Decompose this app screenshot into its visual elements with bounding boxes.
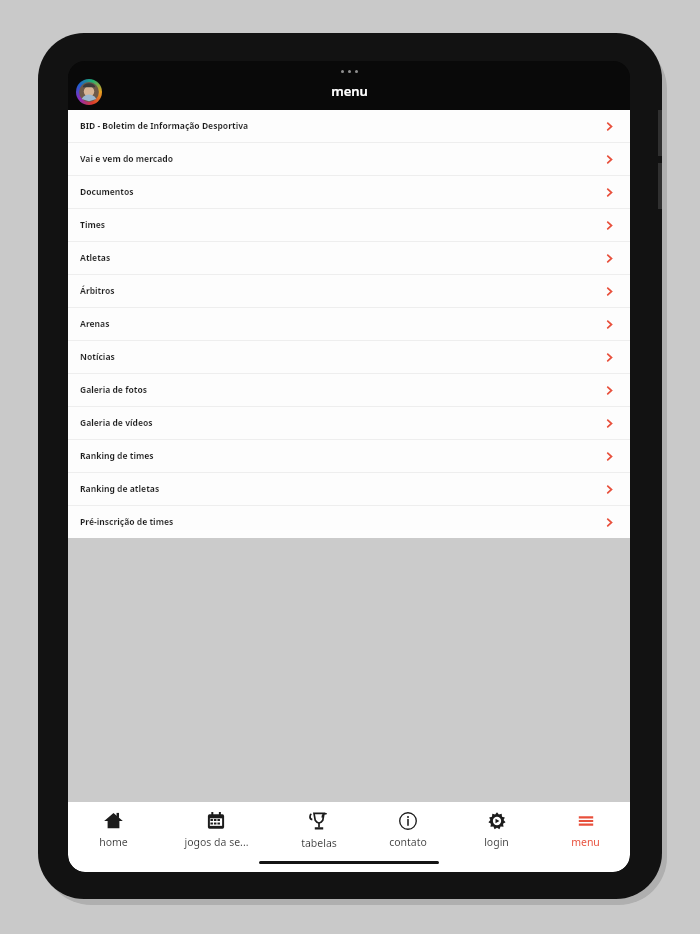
staticText: Atletas (80, 252, 604, 264)
staticText: Galeria de fotos (80, 384, 604, 396)
staticText: BID - Boletim de Informação Desportiva (80, 120, 604, 132)
staticText: tabelas (301, 836, 337, 850)
button[interactable]: Documentos (68, 176, 630, 208)
button[interactable]: jogos da se... (158, 802, 274, 858)
button[interactable]: Árbitros (68, 275, 630, 307)
staticText: home (99, 835, 128, 849)
button[interactable]: Ranking de times (68, 440, 630, 472)
staticText: Vai e vem do mercado (80, 153, 604, 165)
button[interactable]: home (68, 802, 158, 858)
staticText: Galeria de vídeos (80, 417, 604, 429)
staticText: Ranking de atletas (80, 483, 604, 495)
button[interactable]: Atletas (68, 242, 630, 274)
button[interactable]: contato (363, 802, 452, 858)
button[interactable]: tabelas (274, 802, 363, 858)
button[interactable]: Galeria de vídeos (68, 407, 630, 439)
staticText: menu (331, 82, 368, 100)
staticText: Documentos (80, 186, 604, 198)
button[interactable]: login (452, 802, 541, 858)
staticText: menu (571, 835, 600, 849)
button[interactable]: menu (541, 802, 630, 858)
staticText: Notícias (80, 351, 604, 363)
button[interactable]: Arenas (68, 308, 630, 340)
button[interactable]: Times (68, 209, 630, 241)
button[interactable]: Profile (76, 79, 102, 105)
staticText: Arenas (80, 318, 604, 330)
button[interactable]: Vai e vem do mercado (68, 143, 630, 175)
button[interactable]: Galeria de fotos (68, 374, 630, 406)
staticText: Ranking de times (80, 450, 604, 462)
staticText: Pré-inscrição de times (80, 516, 604, 528)
button[interactable]: Pré-inscrição de times (68, 506, 630, 538)
staticText: login (484, 835, 509, 849)
staticText: Árbitros (80, 285, 604, 297)
staticText: contato (389, 835, 427, 849)
button[interactable]: Ranking de atletas (68, 473, 630, 505)
button[interactable]: Notícias (68, 341, 630, 373)
staticText: jogos da se... (184, 835, 249, 849)
button[interactable]: BID - Boletim de Informação Desportiva (68, 110, 630, 142)
staticText: Times (80, 219, 604, 231)
